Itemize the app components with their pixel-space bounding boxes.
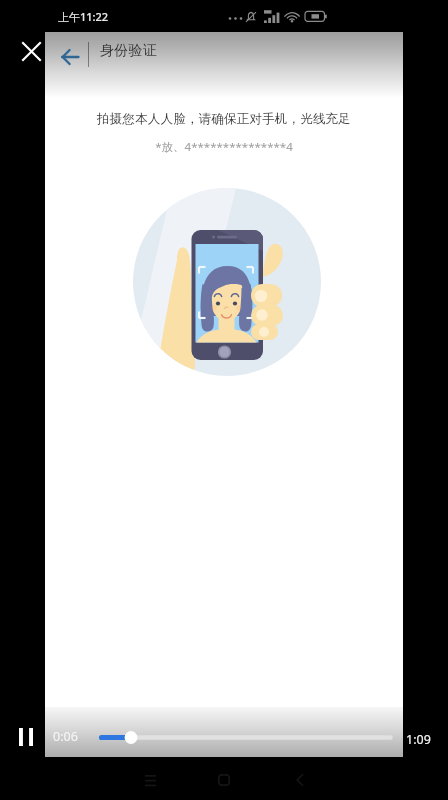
- staticText: 1:09: [406, 731, 431, 748]
- button[interactable]: Seek bar: [100, 731, 392, 744]
- button[interactable]: Back: [49, 36, 90, 77]
- button[interactable]: Recent apps: [130, 760, 170, 800]
- button[interactable]: Home: [204, 760, 244, 800]
- staticText: 0:06: [53, 728, 78, 745]
- button[interactable]: Pause: [12, 723, 40, 751]
- staticText: 身份验证: [100, 42, 158, 60]
- button[interactable]: Close: [16, 36, 46, 66]
- staticText: 拍摄您本人人脸，请确保正对手机，光线充足: [45, 111, 403, 127]
- staticText: 上午11:22: [58, 9, 109, 24]
- staticText: *放、4***************4: [45, 139, 403, 155]
